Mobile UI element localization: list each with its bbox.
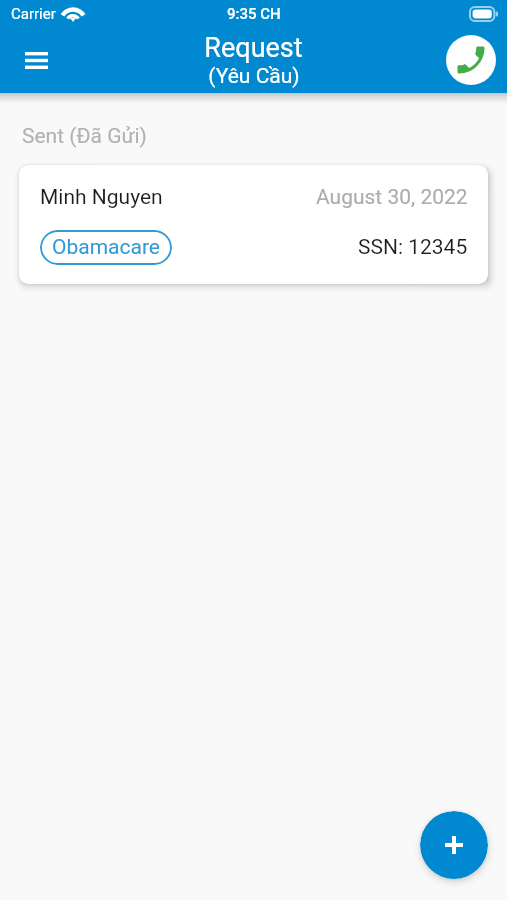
staticText: Minh Nguyen [40, 185, 163, 210]
staticText: Carrier [11, 5, 56, 23]
button[interactable]: Menu [12, 36, 60, 84]
button[interactable]: Minh Nguyen [19, 165, 488, 284]
staticText: Request [204, 32, 303, 64]
staticText: (Yêu Cầu) [208, 64, 300, 89]
staticText: Sent (Đã Gửi) [22, 124, 147, 149]
staticText: Obamacare [52, 235, 160, 260]
button[interactable]: Obamacare [40, 230, 172, 265]
staticText: August 30, 2022 [316, 185, 468, 210]
button[interactable]: Add request [420, 811, 488, 879]
staticText: 9:35 CH [227, 5, 281, 23]
button[interactable]: Call [446, 35, 496, 85]
staticText: SSN: 12345 [358, 235, 468, 260]
